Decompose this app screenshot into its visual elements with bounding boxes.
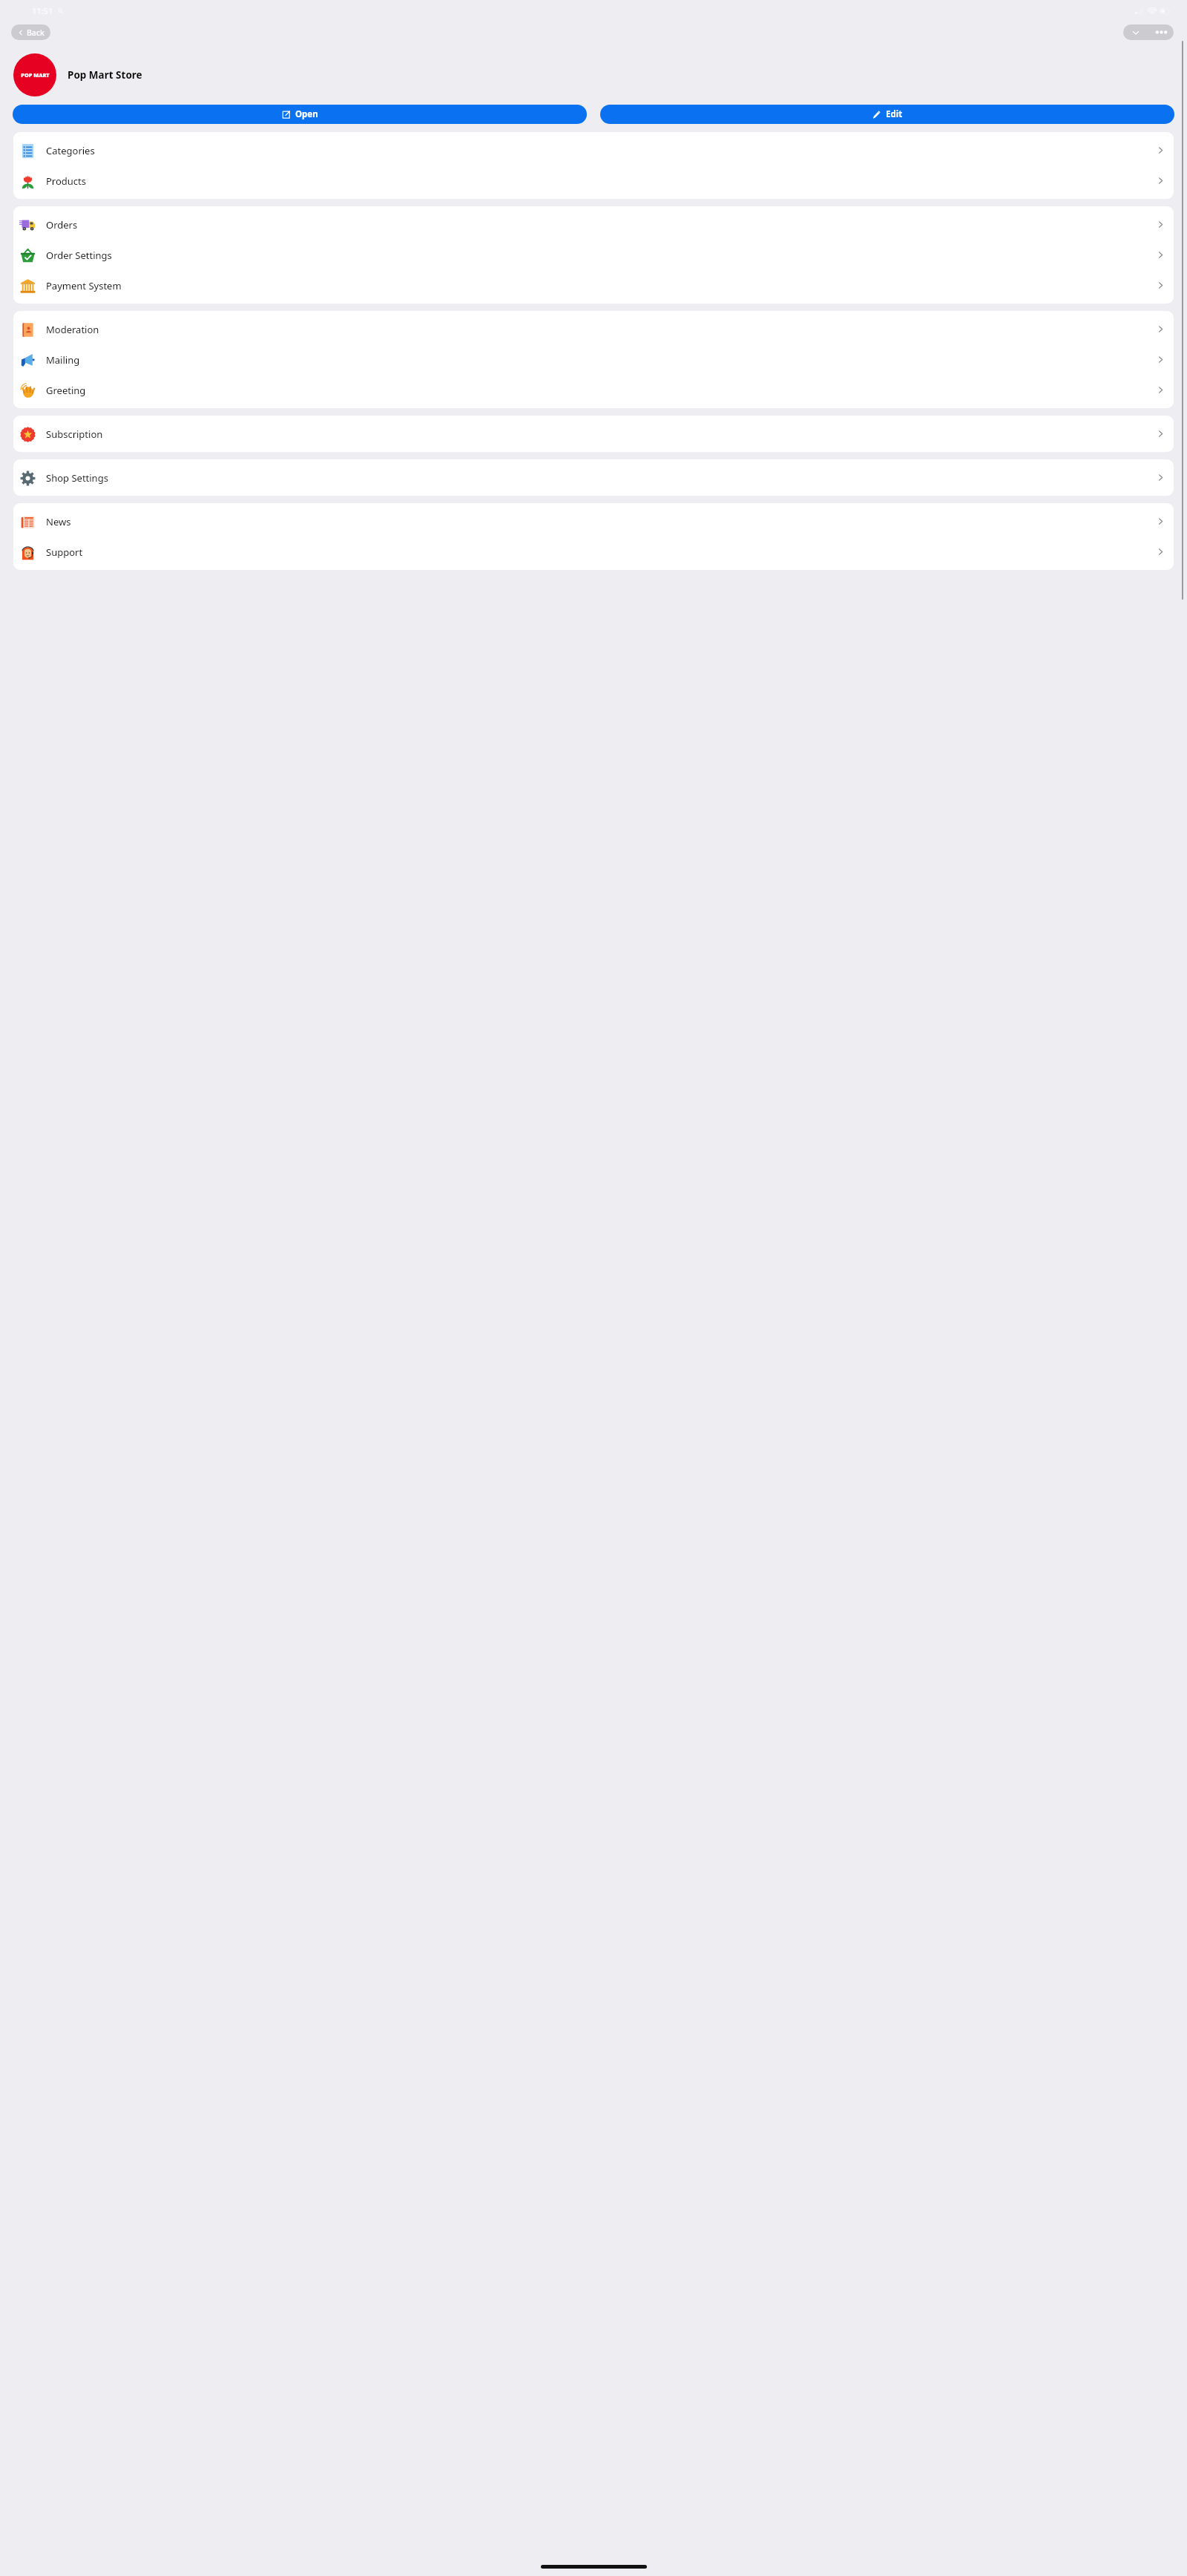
staticText: Greeting <box>46 384 1157 397</box>
staticText: Orders <box>46 218 1157 232</box>
button[interactable]: Shop Settings <box>13 462 1174 493</box>
button[interactable]: Moderation <box>13 314 1174 344</box>
staticText: 11:51 <box>32 5 53 16</box>
staticText: Pop Mart Store <box>68 68 142 82</box>
staticText: Mailing <box>46 353 1157 367</box>
button[interactable]: Collapse <box>1123 24 1148 40</box>
staticText: Subscription <box>46 427 1157 441</box>
staticText: Edit <box>886 108 903 120</box>
button[interactable]: Products <box>13 165 1174 196</box>
button[interactable]: Mailing <box>13 344 1174 375</box>
button[interactable]: Open <box>13 105 587 124</box>
staticText: Order Settings <box>46 249 1157 262</box>
button[interactable]: Back <box>11 24 50 40</box>
staticText: Shop Settings <box>46 471 1157 485</box>
button[interactable]: News <box>13 506 1174 537</box>
button[interactable]: Payment System <box>13 270 1174 301</box>
staticText: Categories <box>46 144 1157 157</box>
staticText: Moderation <box>46 323 1157 336</box>
staticText: Payment System <box>46 279 1157 292</box>
staticText: Products <box>46 174 1157 188</box>
button[interactable]: Order Settings <box>13 240 1174 270</box>
button[interactable]: Categories <box>13 135 1174 165</box>
button[interactable]: Support <box>13 537 1174 567</box>
staticText: POP MART <box>21 71 50 79</box>
button[interactable]: Greeting <box>13 375 1174 405</box>
button[interactable]: Edit <box>600 105 1174 124</box>
staticText: Open <box>295 108 318 120</box>
staticText: News <box>46 515 1157 528</box>
button[interactable]: Orders <box>13 209 1174 240</box>
button[interactable]: More options <box>1148 24 1174 40</box>
staticText: Support <box>46 545 1157 559</box>
button[interactable]: Subscription <box>13 419 1174 449</box>
staticText: Back <box>27 27 45 38</box>
